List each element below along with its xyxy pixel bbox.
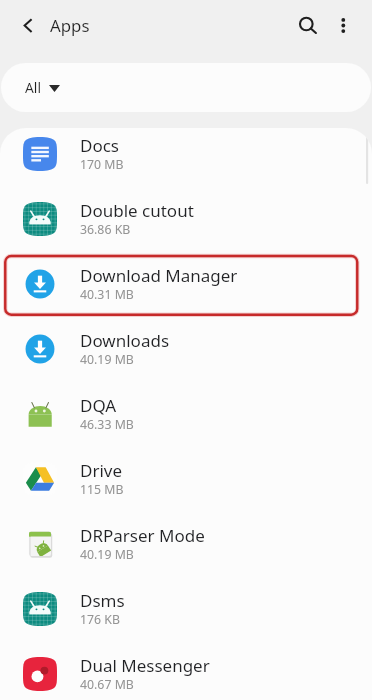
staticText: Apps (50, 14, 90, 37)
button[interactable]: DRParser Mode (0, 511, 372, 576)
staticText: 40.31 MB (80, 286, 134, 303)
staticText: 40.19 MB (80, 546, 134, 563)
staticText: 115 MB (80, 481, 124, 498)
staticText: All (25, 78, 41, 97)
staticText: Drive (80, 459, 123, 482)
button[interactable]: Back (10, 7, 46, 43)
button[interactable]: More options (325, 6, 361, 42)
button[interactable]: Search (288, 6, 324, 42)
staticText: 36.86 KB (80, 221, 131, 238)
staticText: 176 KB (80, 611, 120, 628)
button[interactable]: Double cutout (0, 186, 372, 251)
staticText: DQA (80, 394, 117, 417)
button[interactable]: Dual Messenger (0, 641, 372, 700)
staticText: Docs (80, 134, 119, 157)
button[interactable]: Docs (0, 128, 372, 186)
staticText: Dual Messenger (80, 654, 210, 677)
staticText: Download Manager (80, 264, 238, 287)
staticText: 46.33 MB (80, 416, 134, 433)
button[interactable]: Drive (0, 446, 372, 511)
button[interactable]: All (1, 63, 371, 112)
button[interactable]: DQA (0, 381, 372, 446)
staticText: 40.67 MB (80, 676, 134, 693)
staticText: 170 MB (80, 156, 124, 173)
button[interactable]: Downloads (0, 316, 372, 381)
staticText: Double cutout (80, 199, 194, 222)
staticText: DRParser Mode (80, 524, 205, 547)
staticText: Downloads (80, 329, 170, 352)
staticText: Dsms (80, 589, 125, 612)
button[interactable]: Download Manager (0, 251, 372, 316)
staticText: 40.19 MB (80, 351, 134, 368)
button[interactable]: Dsms (0, 576, 372, 641)
